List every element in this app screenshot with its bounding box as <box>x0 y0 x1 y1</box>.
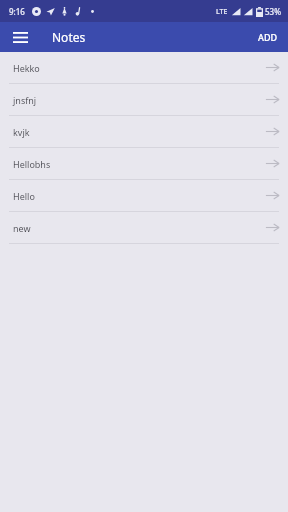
staticText: Notes <box>52 29 86 45</box>
button[interactable]: new <box>0 212 288 244</box>
button[interactable]: jnsfnj <box>0 84 288 116</box>
staticText: Hello <box>13 190 35 202</box>
staticText: kvjk <box>13 126 30 138</box>
staticText: Hekko <box>13 62 40 74</box>
staticText: Hellobhs <box>13 158 51 170</box>
staticText: jnsfnj <box>13 94 37 106</box>
staticText: ADD <box>258 31 278 43</box>
staticText: 9:16 <box>9 6 25 17</box>
button[interactable]: Hekko <box>0 52 288 84</box>
button[interactable]: Hellobhs <box>0 148 288 180</box>
staticText: new <box>13 222 31 234</box>
button[interactable]: kvjk <box>0 116 288 148</box>
staticText: LTE <box>216 7 228 17</box>
button[interactable]: Open navigation menu <box>8 25 32 49</box>
button[interactable]: Hello <box>0 180 288 212</box>
staticText: 53% <box>265 6 281 17</box>
button[interactable]: ADD <box>248 22 288 52</box>
